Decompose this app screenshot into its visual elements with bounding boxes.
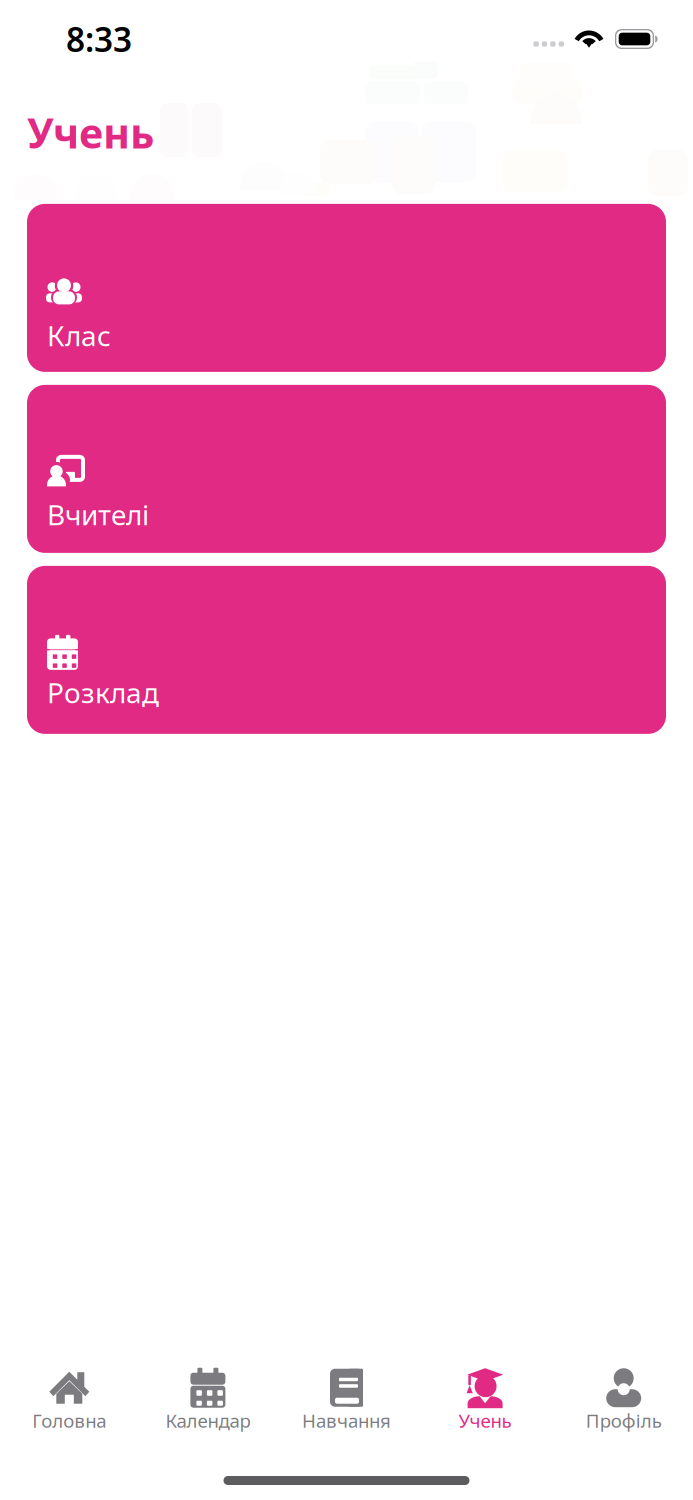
button[interactable]: Клас [27, 204, 666, 372]
staticText: Учень [27, 105, 154, 160]
button[interactable]: Календар [139, 1367, 277, 1433]
staticText: Вчителі [47, 496, 149, 533]
button[interactable]: Головна [0, 1367, 139, 1433]
button[interactable]: Розклад [27, 566, 666, 734]
staticText: Клас [47, 317, 111, 354]
staticText: 8:33 [66, 17, 132, 61]
button[interactable]: Вчителі [27, 385, 666, 553]
staticText: Головна [32, 1408, 106, 1433]
staticText: Розклад [47, 674, 159, 711]
button[interactable]: Профіль [554, 1367, 693, 1433]
staticText: Учень [459, 1408, 512, 1433]
button[interactable]: Навчання [277, 1367, 416, 1433]
staticText: Календар [165, 1408, 250, 1433]
staticText: Навчання [302, 1408, 391, 1433]
staticText: Профіль [586, 1408, 662, 1433]
button[interactable]: Учень [416, 1367, 554, 1433]
